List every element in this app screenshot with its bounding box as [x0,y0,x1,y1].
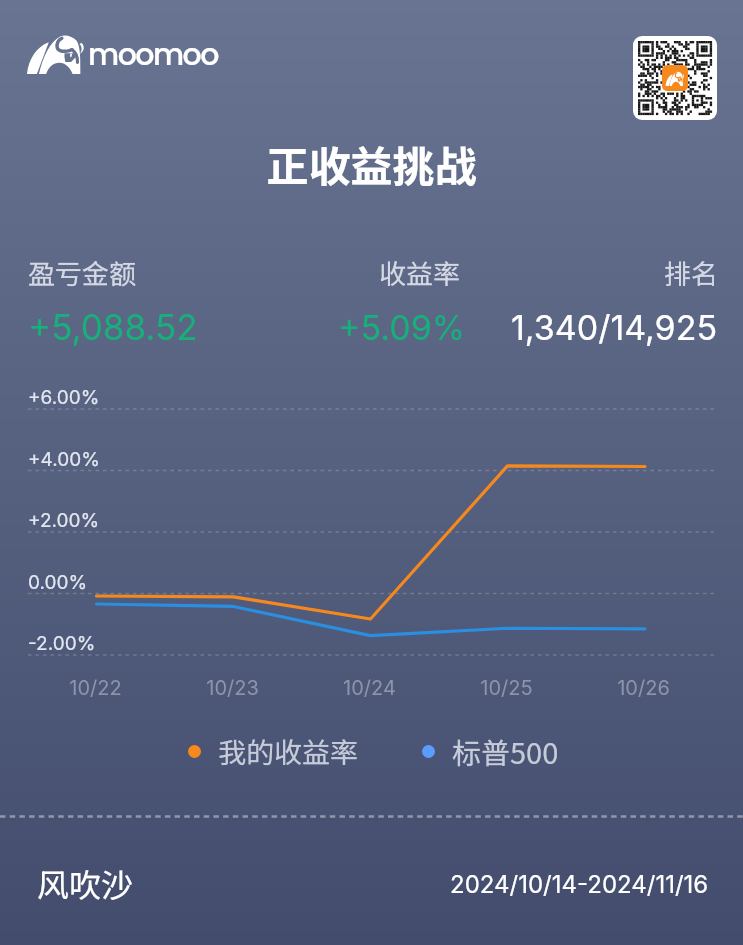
staticText: +6.00% [28,386,100,409]
staticText: 排名 [664,253,718,292]
staticText: 标普500 [452,730,559,772]
staticText: +4.00% [28,448,100,471]
button[interactable]: 我的收益率 [188,731,359,772]
staticText: 10/26 [617,676,670,700]
staticText: 盈亏金额 [28,253,136,292]
staticText: 正收益挑战 [0,133,743,194]
staticText: 我的收益率 [218,731,359,772]
staticText: moomoo [88,34,218,76]
staticText: +5.09% [338,307,466,348]
staticText: -2.00% [28,632,96,655]
staticText: 10/25 [480,676,533,700]
staticText: 10/23 [206,676,259,700]
staticText: 2024/10/14-2024/11/16 [450,870,709,899]
staticText: +2.00% [28,509,100,532]
staticText: 10/24 [343,676,396,700]
button[interactable]: QR code [633,36,717,120]
staticText: 0.00% [28,571,88,594]
staticText: 10/22 [69,676,122,700]
staticText: 收益率 [379,253,460,292]
staticText: 1,340/14,925 [511,307,718,348]
button[interactable]: 标普500 [422,730,559,772]
staticText: +5,088.52 [28,306,198,348]
button[interactable]: moomoo [22,28,232,80]
staticText: 风吹沙 [37,860,134,906]
